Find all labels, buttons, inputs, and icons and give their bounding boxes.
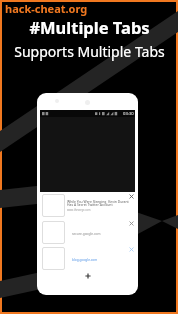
button[interactable]: Close tab [129, 221, 134, 226]
button[interactable]: Close tab [129, 247, 134, 252]
button[interactable]: secure.google.com [40, 219, 135, 246]
staticText: Supports Multiple Tabs [14, 42, 165, 61]
staticText: hack-cheat.org [5, 1, 88, 16]
staticText: www.theverge.com [67, 208, 91, 212]
button[interactable]: blog.google.com [40, 245, 135, 272]
staticText: 03:30 [123, 111, 134, 117]
button[interactable]: While You Were Sleeping, Kevin Durant Ha… [40, 192, 135, 219]
staticText: #Multiple Tabs [29, 16, 150, 38]
button[interactable]: Close tab [129, 194, 134, 199]
staticText: While You Were Sleeping, Kevin Durant Ha… [67, 199, 129, 207]
staticText: secure.google.com [72, 232, 101, 236]
staticText: blog.google.com [72, 258, 98, 262]
button[interactable]: New tab [85, 273, 91, 279]
